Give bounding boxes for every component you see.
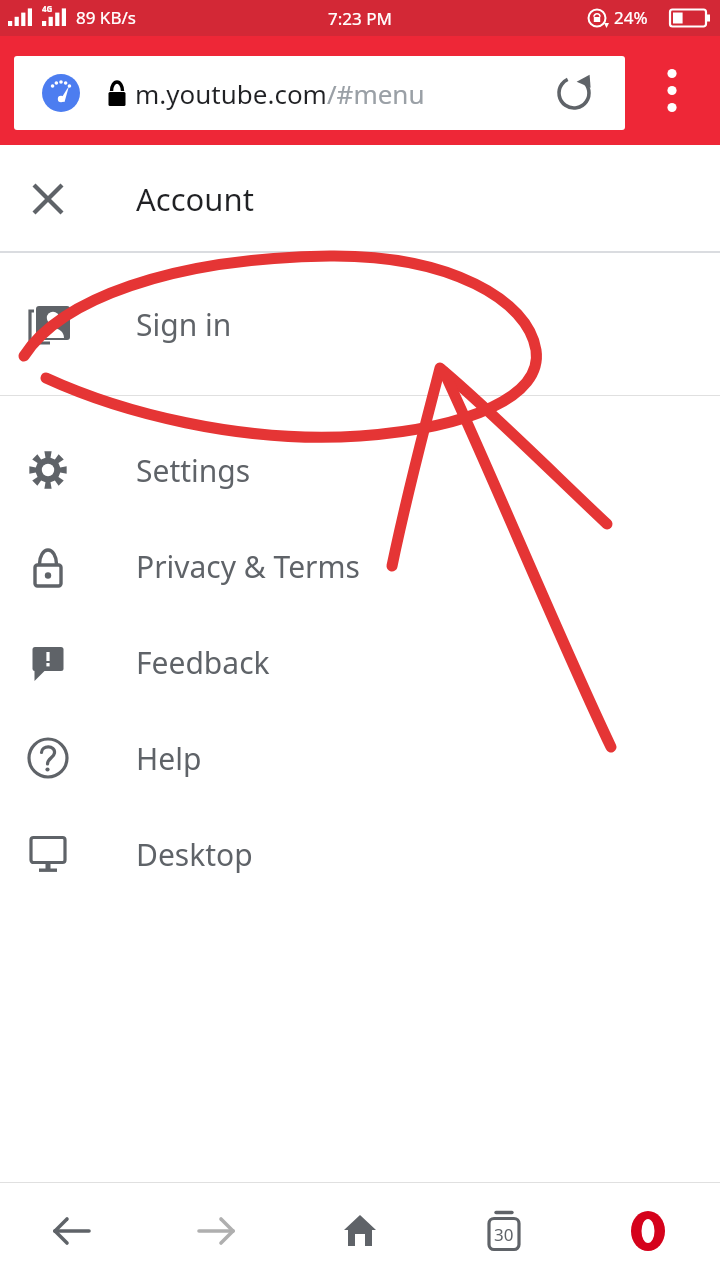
staticText: 24% bbox=[614, 6, 648, 29]
button[interactable]: Home bbox=[312, 1182, 408, 1280]
staticText: m.youtube.com/#menu bbox=[135, 76, 425, 111]
staticText: 89 KB/s bbox=[76, 6, 136, 29]
button[interactable]: Settings bbox=[0, 422, 720, 518]
button[interactable]: Opera menu bbox=[600, 1182, 696, 1280]
button[interactable]: More options bbox=[645, 36, 699, 145]
button[interactable]: Tabs: 30 bbox=[456, 1182, 552, 1280]
staticText: Settings bbox=[136, 450, 251, 491]
staticText: Sign in bbox=[136, 304, 232, 345]
button[interactable]: Feedback bbox=[0, 614, 720, 710]
button[interactable]: Help bbox=[0, 710, 720, 806]
button[interactable]: Back bbox=[24, 1182, 120, 1280]
staticText: Account bbox=[136, 178, 254, 220]
staticText: Help bbox=[136, 738, 202, 779]
staticText: 7:23 PM bbox=[328, 7, 392, 30]
staticText: Desktop bbox=[136, 834, 253, 875]
staticText: Feedback bbox=[136, 642, 270, 683]
button[interactable]: Reload bbox=[549, 68, 599, 118]
button[interactable]: m.youtube.com/#menu bbox=[14, 56, 625, 130]
staticText: 4G bbox=[42, 3, 53, 14]
button[interactable]: Sign in bbox=[0, 276, 720, 372]
button[interactable]: Desktop bbox=[0, 806, 720, 902]
button[interactable]: Privacy & Terms bbox=[0, 518, 720, 614]
staticText: Privacy & Terms bbox=[136, 546, 360, 587]
staticText: 30 bbox=[494, 1223, 514, 1246]
button[interactable]: Close bbox=[14, 165, 82, 233]
button[interactable]: Forward bbox=[168, 1182, 264, 1280]
